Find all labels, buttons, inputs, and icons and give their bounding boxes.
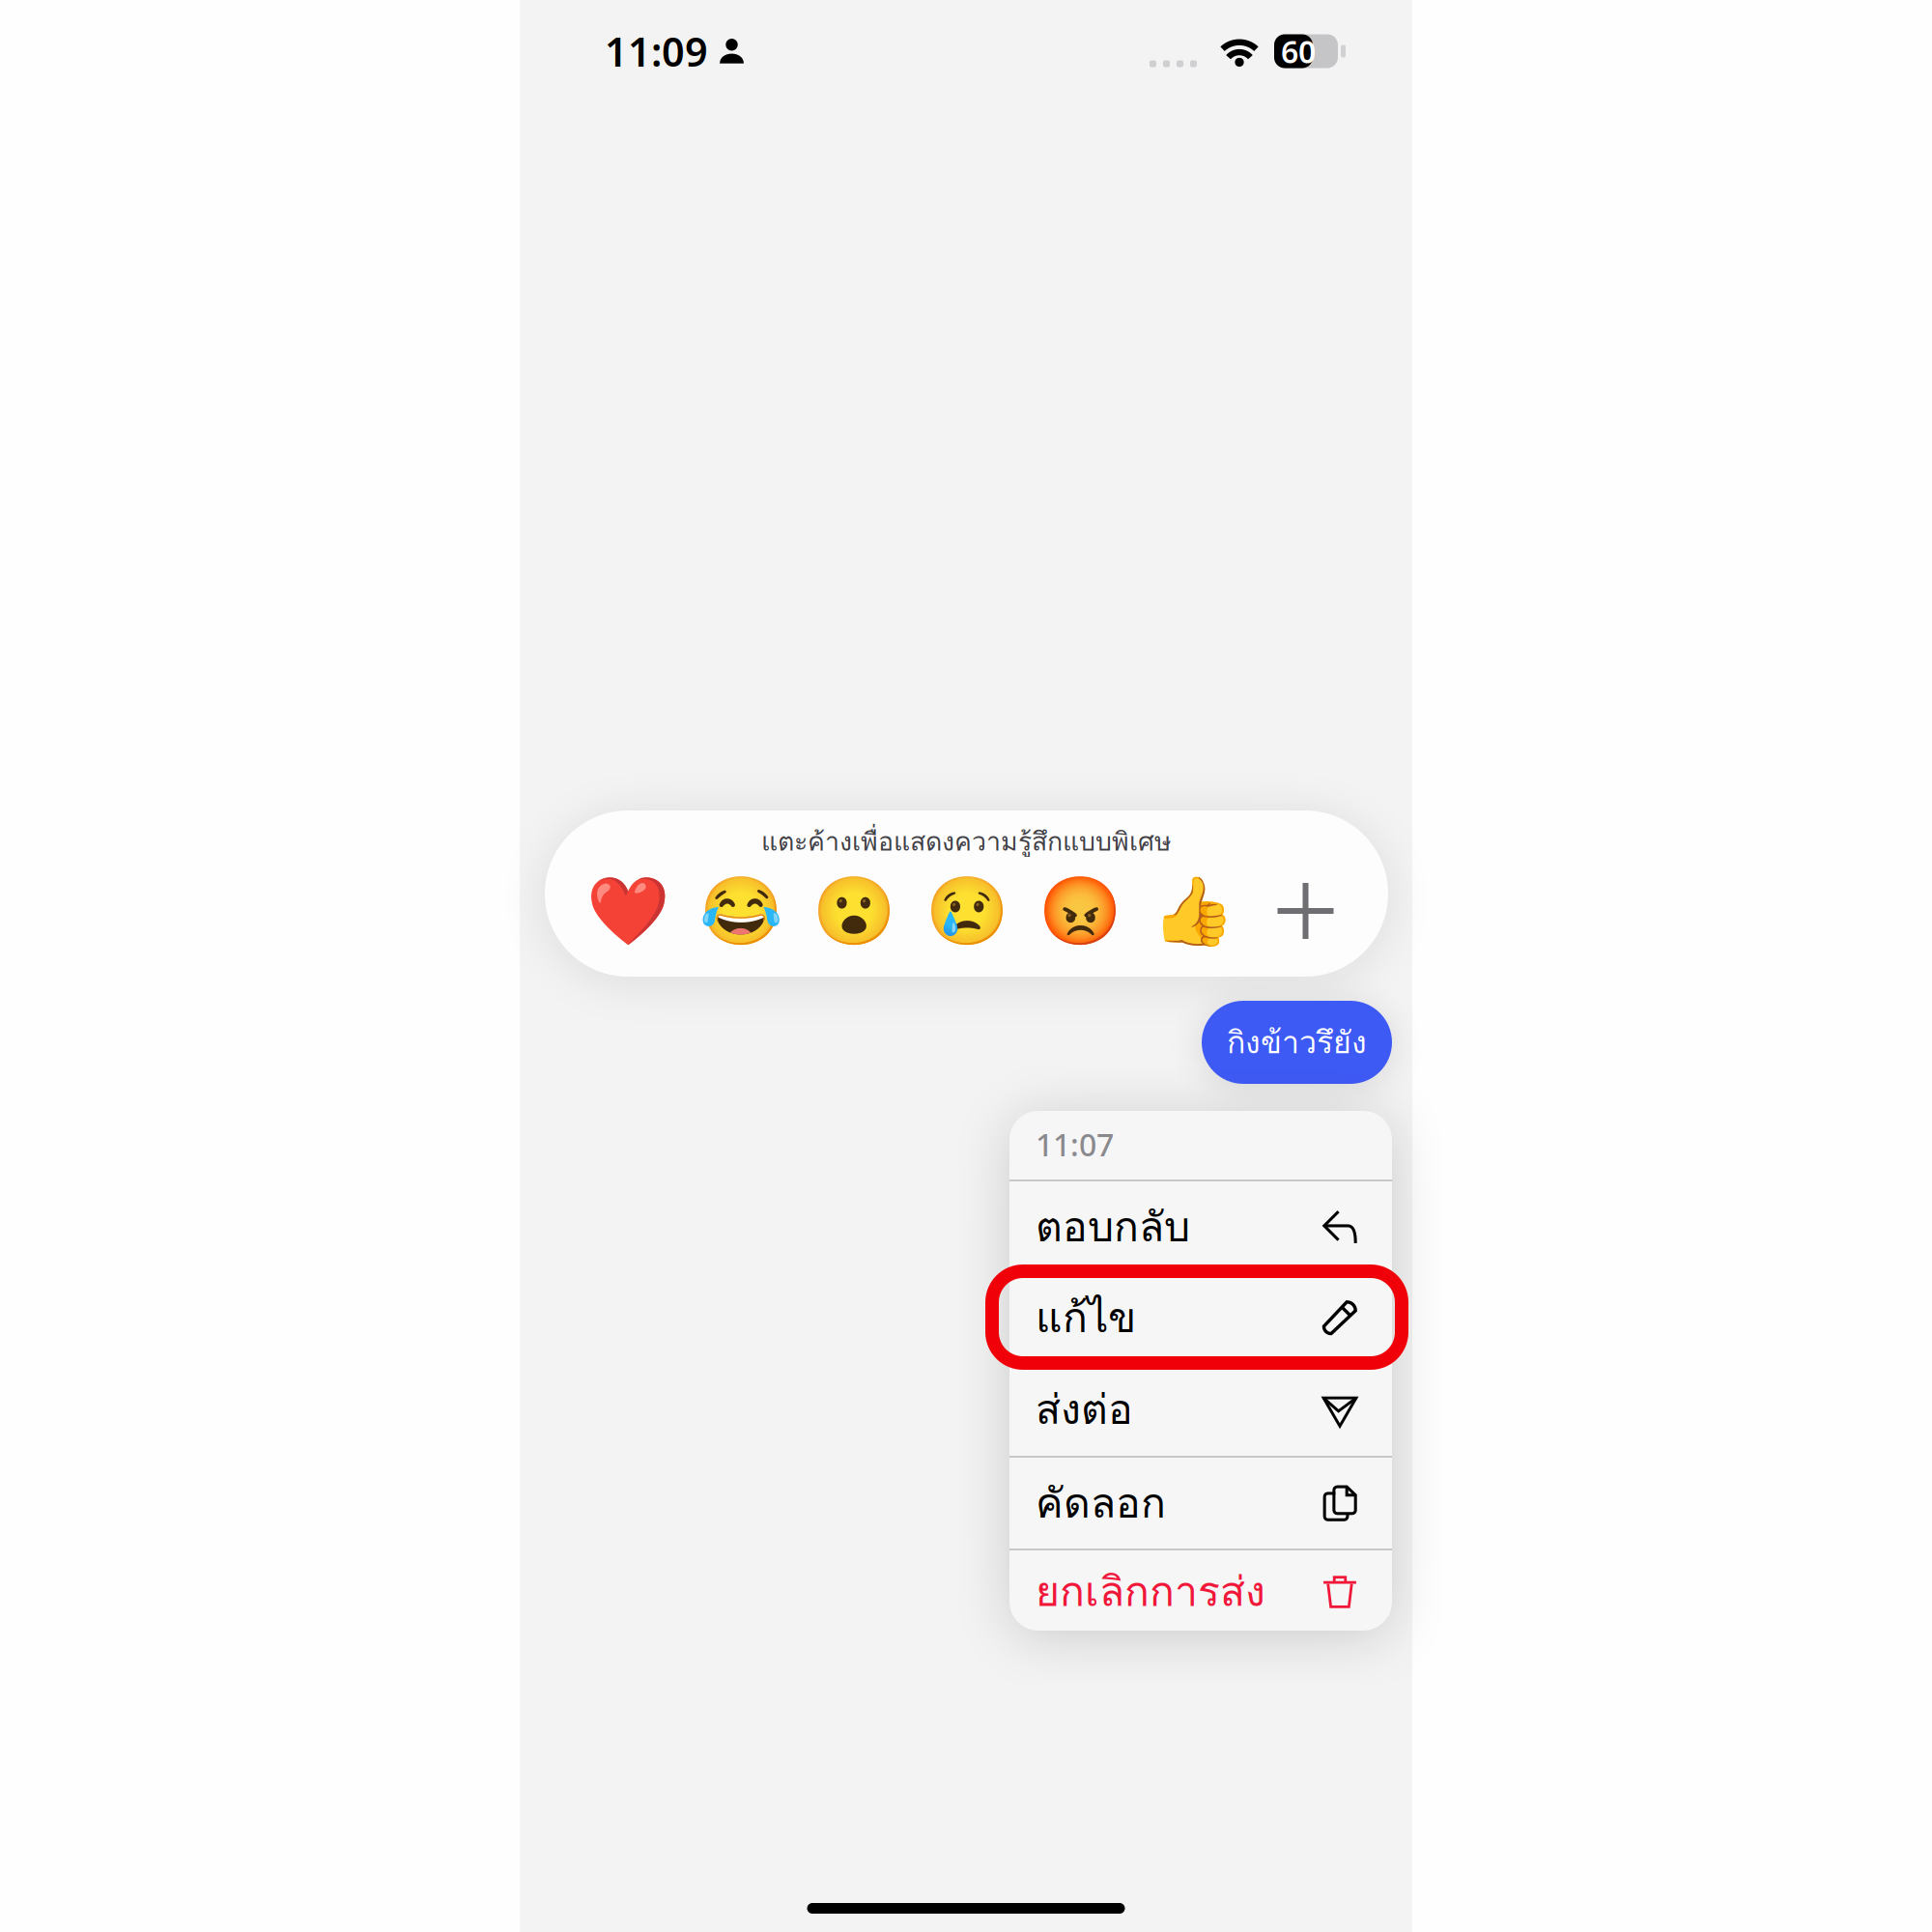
button[interactable]: Wow [797,861,910,961]
staticText: 👍 [1151,873,1235,949]
staticText: ส่งต่อ [1036,1377,1133,1441]
staticText: ยกเลิกการส่ง [1036,1560,1265,1623]
staticText: 11:09 [605,25,708,78]
button[interactable]: กิงข้าวรึยัง [1202,1001,1392,1084]
staticText: 😢 [925,873,1009,949]
button[interactable]: Laugh [684,861,797,961]
staticText: 60 [1281,31,1316,72]
staticText: ❤️ [586,873,669,949]
button[interactable]: Sad [910,861,1023,961]
staticText: 😡 [1038,873,1122,949]
staticText: แตะค้างเพื่อแสดงความรู้สึกแบบพิเศษ [761,821,1172,861]
staticText: กิงข้าวรึยัง [1227,1018,1367,1066]
button[interactable]: แก้ไข [1009,1272,1392,1363]
staticText: แก้ไข [1036,1286,1136,1350]
staticText: คัดลอก [1036,1471,1166,1535]
staticText: 11:07 [1036,1124,1114,1165]
button[interactable]: ส่งต่อ [1009,1363,1392,1456]
staticText: ตอบกลับ [1036,1195,1190,1259]
button[interactable]: คัดลอก [1009,1458,1392,1548]
button[interactable]: Thumbs up [1136,861,1250,961]
button[interactable]: ตอบกลับ [1009,1181,1392,1272]
button[interactable]: More reactions [1250,861,1362,961]
button[interactable]: ยกเลิกการส่ง [1009,1550,1392,1633]
button[interactable]: Love [571,861,684,961]
staticText: 😂 [699,873,782,949]
button[interactable]: Angry [1023,861,1136,961]
staticText: 😮 [812,873,895,949]
